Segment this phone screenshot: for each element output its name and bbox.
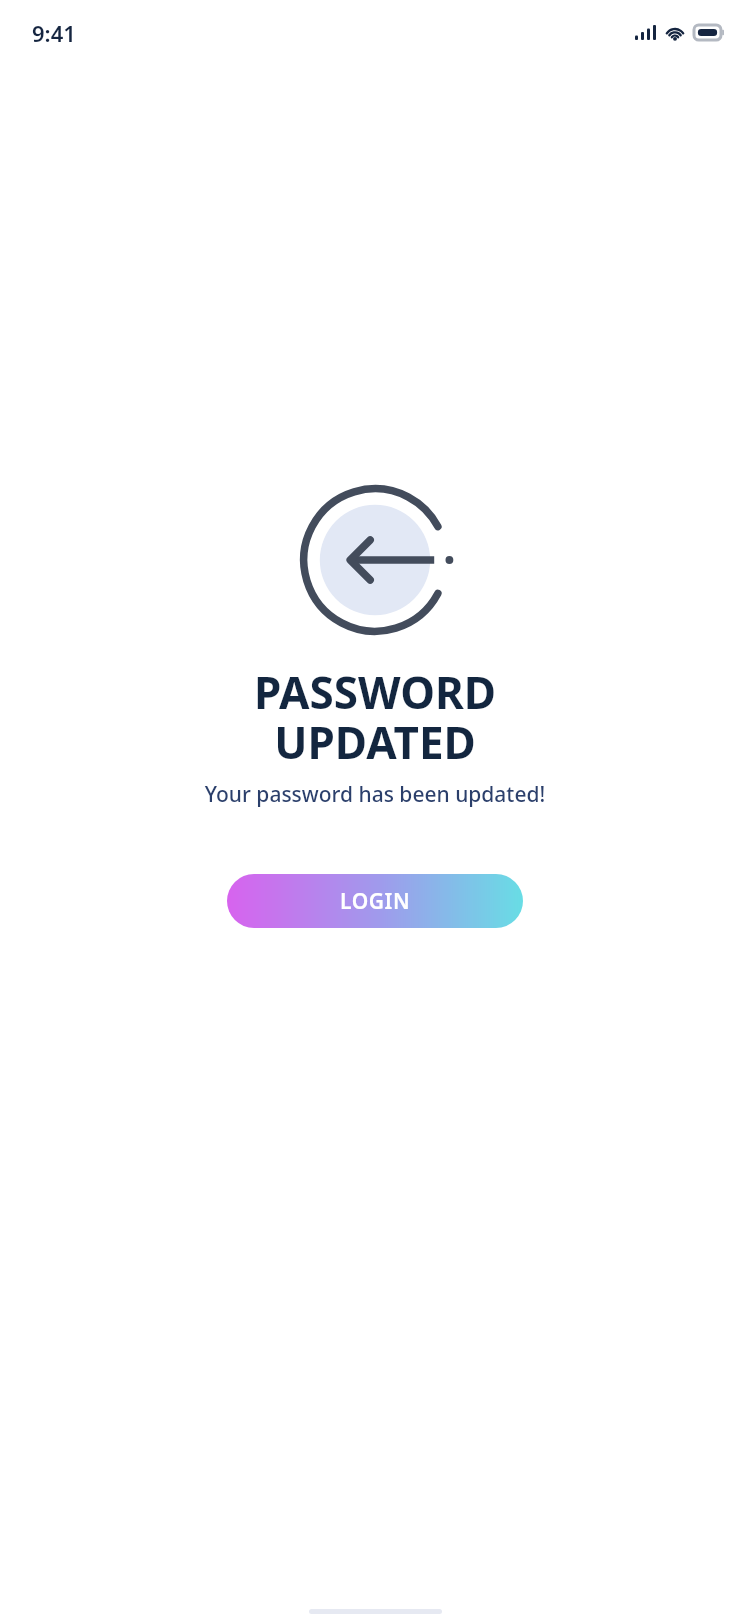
staticText: 9:41 [32, 18, 76, 48]
staticText: LOGIN [340, 887, 411, 916]
staticText: Your password has been updated! [0, 780, 750, 809]
button[interactable]: LOGIN [227, 874, 523, 928]
staticText: PASSWORD UPDATED [0, 662, 750, 772]
